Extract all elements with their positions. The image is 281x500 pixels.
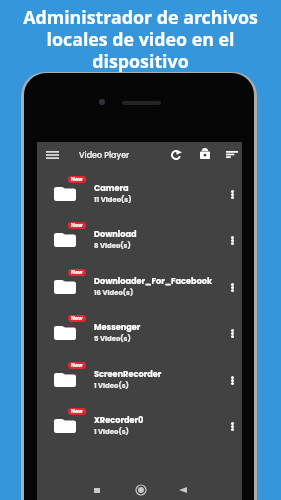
staticText: Messenger [94,321,141,332]
staticText: New [71,176,83,183]
button[interactable]: Lock [194,142,216,164]
staticText: 16 Video(s) [94,288,134,298]
staticText: New [71,315,83,322]
button[interactable]: New [37,355,242,401]
staticText: Administrador de archivos locales de vid… [0,5,281,73]
button[interactable]: More options [222,184,242,204]
staticText: New [71,362,83,369]
button[interactable]: More options [222,230,242,250]
staticText: New [71,222,83,229]
staticText: New [71,408,83,415]
button[interactable]: Home [130,479,152,500]
button[interactable]: More options [222,416,242,436]
staticText: Download [94,228,137,239]
staticText: 8 Video(s) [94,241,131,251]
staticText: 1 Video(s) [94,427,129,437]
button[interactable]: Refresh [165,144,187,166]
button[interactable]: More options [222,277,242,297]
button[interactable]: New [37,262,242,308]
staticText: ScreenRecorder [94,368,162,379]
button[interactable]: New [37,401,242,447]
staticText: New [71,269,83,276]
button[interactable]: More options [222,323,242,343]
button[interactable]: New [37,215,242,261]
button[interactable]: Sort [221,143,243,165]
staticText: 1 Video(s) [94,381,129,391]
staticText: Downloader_For_Facebook [94,275,213,286]
button[interactable]: Menu [40,144,64,166]
button[interactable]: More options [222,370,242,390]
button[interactable]: New [37,308,242,354]
staticText: Video Player [79,150,130,161]
staticText: 11 Video(s) [94,195,132,205]
staticText: 5 Video(s) [94,334,131,344]
button[interactable]: Back [172,479,194,500]
staticText: XRecorder0 [94,414,144,425]
button[interactable]: New [37,169,242,215]
staticText: Camera [94,182,129,193]
button[interactable]: Recents [86,479,108,500]
